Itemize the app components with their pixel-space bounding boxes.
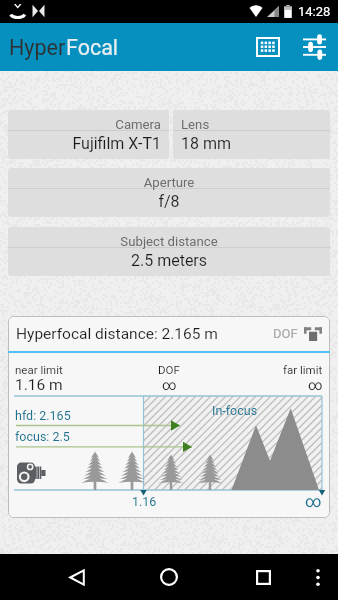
button[interactable]: Aperture <box>8 168 330 217</box>
staticText: 1.16 m <box>15 376 63 394</box>
staticText: far limit <box>283 363 323 376</box>
button[interactable]: Camera <box>8 110 169 159</box>
button[interactable]: Home <box>146 554 192 600</box>
button[interactable]: More options <box>301 560 335 594</box>
button[interactable]: Settings <box>291 23 338 71</box>
staticText: 14:28 <box>298 4 331 19</box>
button[interactable]: Subject distance <box>8 227 330 276</box>
staticText: Camera <box>16 117 161 132</box>
staticText: Focal <box>66 35 119 60</box>
staticText: near limit <box>15 363 63 376</box>
staticText: 1.16 <box>132 494 157 509</box>
button[interactable]: Toggle depth of field view <box>270 324 325 343</box>
button[interactable]: Lens <box>173 110 330 159</box>
staticText: focus: 2.5 <box>15 429 70 444</box>
staticText: DOF <box>273 326 298 341</box>
button[interactable]: Recents <box>240 554 286 600</box>
staticText: Lens <box>181 117 322 132</box>
staticText: ∞ <box>305 492 322 511</box>
staticText: DOF <box>158 363 180 376</box>
staticText: f/8 <box>16 192 322 211</box>
button[interactable]: Back <box>54 554 100 600</box>
staticText: 18 mm <box>181 134 322 153</box>
staticText: Fujifilm X-T1 <box>16 134 161 153</box>
staticText: ∞ <box>308 377 323 393</box>
staticText: Aperture <box>16 175 322 190</box>
staticText: ∞ <box>162 377 177 393</box>
staticText: Hyperfocal distance: 2.165 m <box>16 325 218 343</box>
staticText: 2.5 meters <box>16 251 322 270</box>
staticText: Subject distance <box>16 234 322 249</box>
button[interactable]: Table <box>244 23 291 71</box>
staticText: hfd: 2.165 <box>15 408 71 423</box>
staticText: Hyper <box>9 35 66 60</box>
staticText: In-focus <box>212 403 258 418</box>
